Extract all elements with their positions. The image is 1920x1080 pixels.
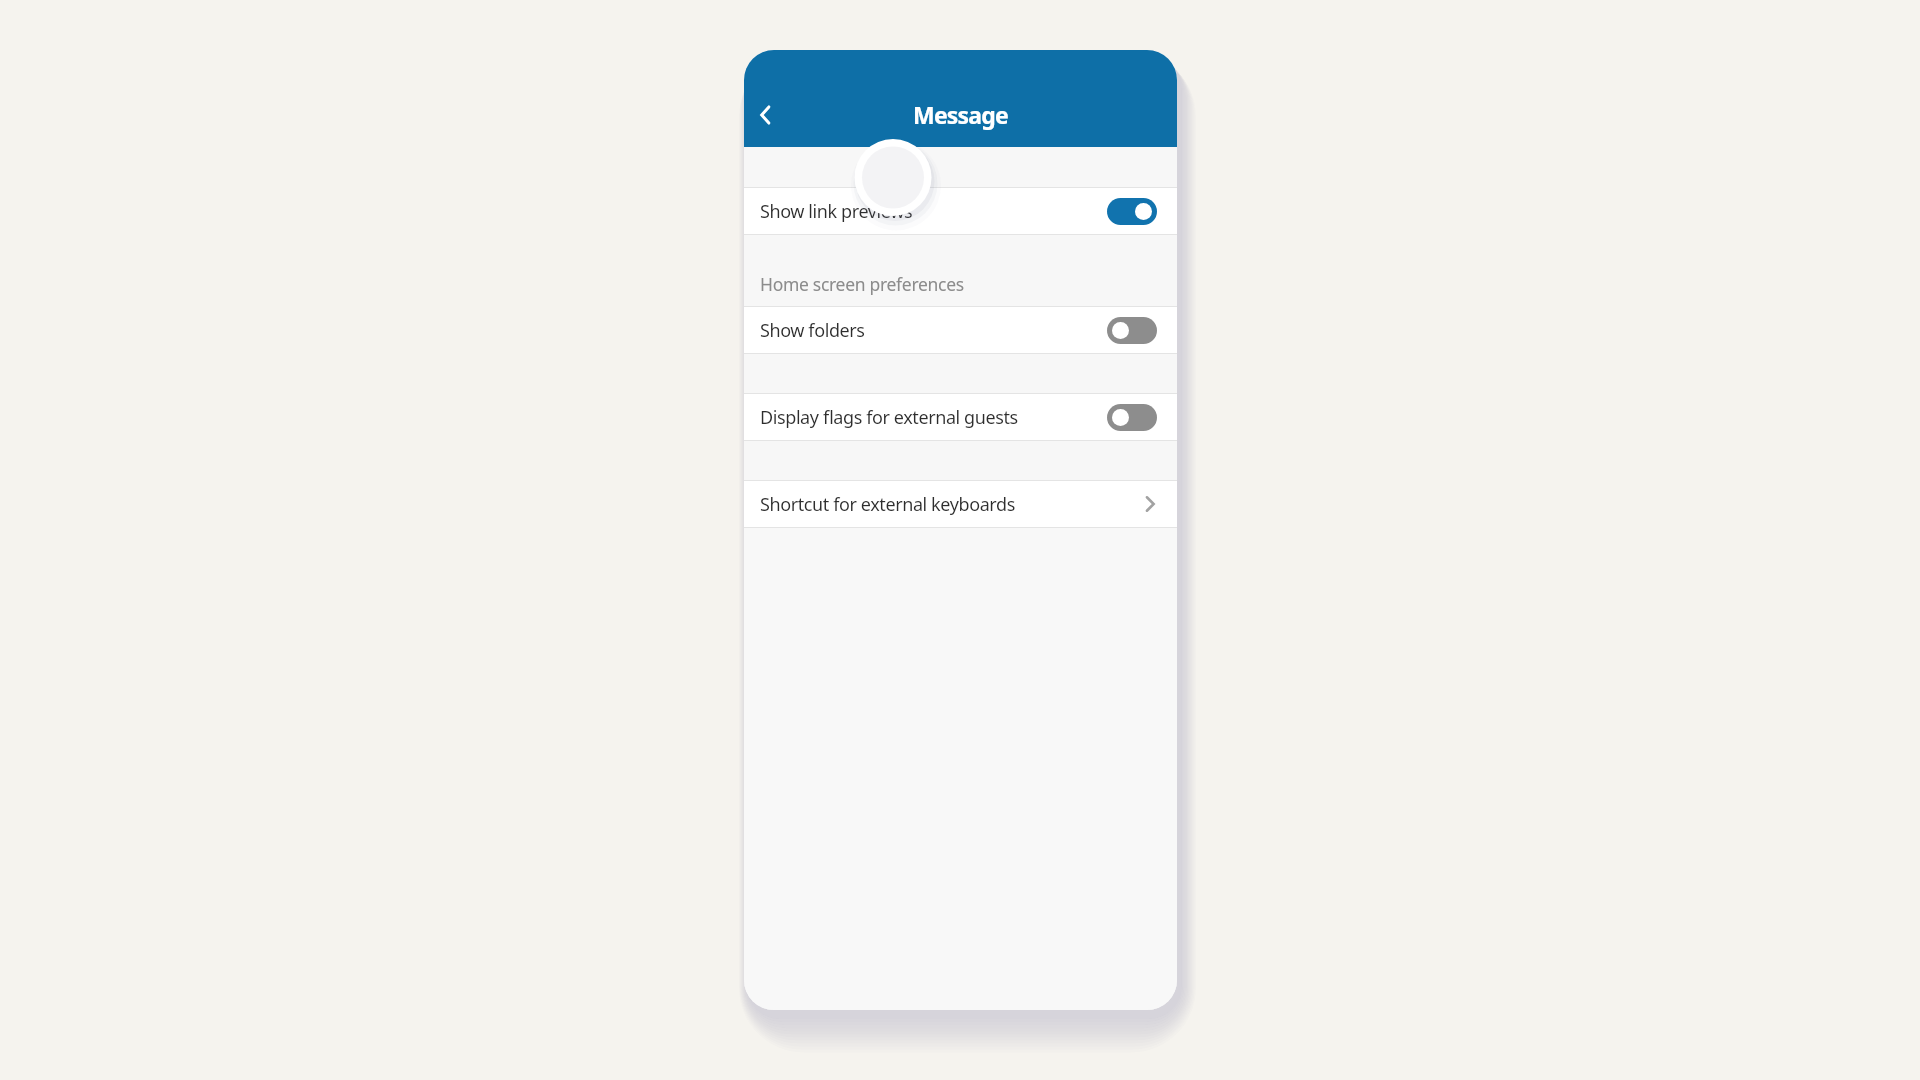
button[interactable] xyxy=(1107,198,1157,225)
button[interactable]: Show folders xyxy=(744,307,1177,353)
button[interactable] xyxy=(1107,404,1157,431)
staticText: Show folders xyxy=(760,318,865,343)
staticText: Display flags for external guests xyxy=(760,405,1018,430)
staticText: Shortcut for external keyboards xyxy=(760,492,1015,517)
button[interactable] xyxy=(1107,317,1157,344)
staticText: Show link previews xyxy=(760,199,913,224)
staticText: Home screen preferences xyxy=(760,272,964,296)
button[interactable] xyxy=(748,97,784,133)
button[interactable]: Show link previews xyxy=(744,188,1177,234)
button[interactable]: Shortcut for external keyboards xyxy=(744,481,1177,527)
staticText: Message xyxy=(913,99,1008,130)
button[interactable]: Display flags for external guests xyxy=(744,394,1177,440)
